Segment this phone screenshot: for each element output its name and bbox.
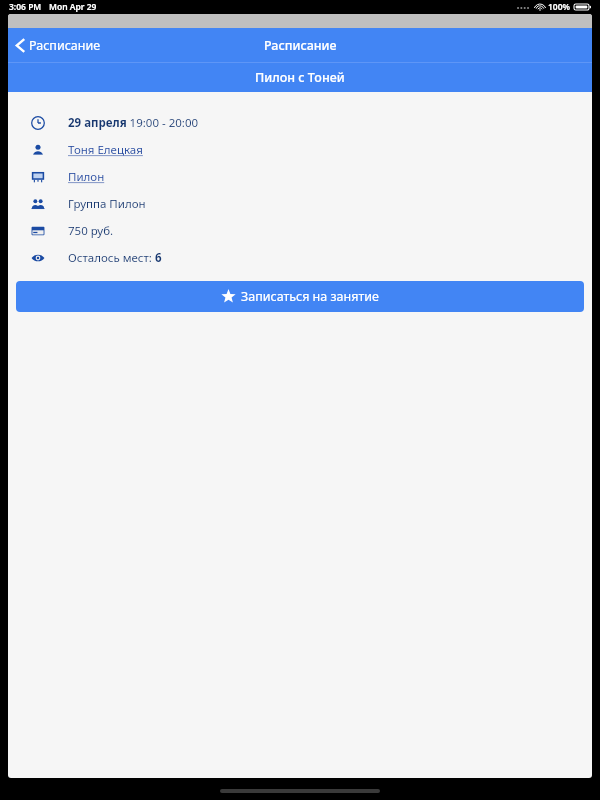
staticText: Записаться на занятие bbox=[241, 288, 379, 305]
button[interactable]: Пилон bbox=[68, 169, 105, 185]
other: Price bbox=[31, 224, 45, 238]
other: Room bbox=[31, 170, 45, 184]
staticText: Расписание bbox=[264, 37, 337, 54]
staticText: Mon Apr 29 bbox=[49, 1, 97, 13]
staticText: 750 руб. bbox=[68, 223, 114, 239]
staticText: 29 апреля 19:00 - 20:00 bbox=[68, 115, 199, 131]
button[interactable]: Записаться на занятие bbox=[16, 281, 584, 312]
staticText: Пилон с Тоней bbox=[255, 69, 345, 86]
staticText: Группа Пилон bbox=[68, 196, 146, 212]
other: Group bbox=[31, 197, 45, 211]
staticText: 3:06 PM bbox=[9, 1, 42, 13]
staticText: Тоня Елецкая bbox=[68, 142, 143, 158]
other: Seats left bbox=[31, 251, 45, 265]
other: Time bbox=[31, 116, 45, 130]
staticText: Пилон bbox=[68, 169, 105, 185]
staticText: Осталось мест: 6 bbox=[68, 250, 162, 266]
button[interactable]: Тоня Елецкая bbox=[68, 142, 143, 158]
staticText: Расписание bbox=[29, 37, 101, 54]
staticText: 100% bbox=[548, 1, 571, 13]
other: Teacher bbox=[31, 143, 45, 157]
button[interactable]: Расписание bbox=[8, 31, 115, 60]
